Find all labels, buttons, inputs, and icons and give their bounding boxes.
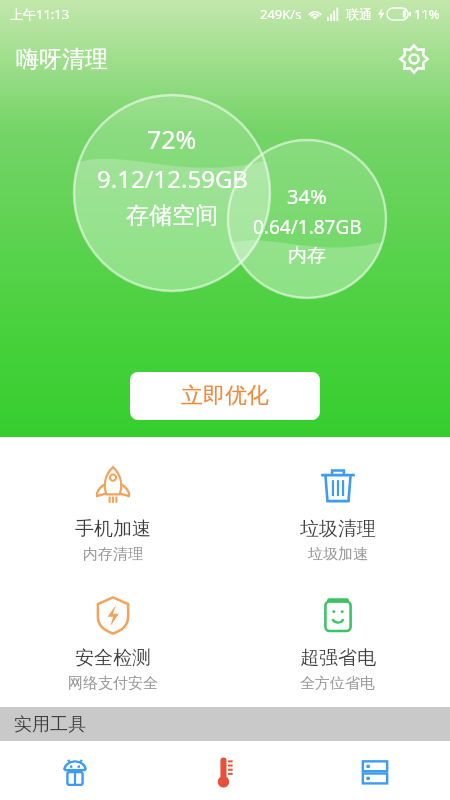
staticText: 全方位省电 <box>300 674 375 693</box>
staticText: 立即优化 <box>181 382 269 410</box>
staticText: 存储空间 <box>126 201 218 230</box>
staticText: 34% <box>287 183 327 210</box>
staticText: 垃圾加速 <box>308 545 368 564</box>
button[interactable]: 超强省电 <box>225 588 450 699</box>
staticText: 0.64/1.87GB <box>253 214 362 240</box>
button[interactable]: 垃圾清理 <box>225 459 450 570</box>
staticText: 手机加速 <box>75 517 151 541</box>
staticText: 超强省电 <box>300 646 376 670</box>
staticText: 嗨呀清理 <box>16 45 108 74</box>
staticText: 9.12/12.59GB <box>97 162 248 195</box>
button[interactable]: 立即优化 <box>130 372 320 420</box>
button[interactable]: CPU cooling <box>150 753 300 800</box>
button[interactable]: App manager <box>300 753 450 800</box>
staticText: 网络支付安全 <box>68 674 158 693</box>
staticText: 72% <box>147 122 197 156</box>
button[interactable]: 安全检测 <box>0 588 225 699</box>
staticText: 11% <box>414 5 440 23</box>
staticText: 安全检测 <box>75 646 151 670</box>
staticText: 联通 <box>346 6 372 22</box>
staticText: 实用工具 <box>14 713 86 736</box>
button[interactable]: Android cleanup <box>0 753 150 800</box>
button[interactable]: 手机加速 <box>0 459 225 570</box>
staticText: 内存 <box>288 244 326 268</box>
staticText: 249K/s <box>260 5 302 23</box>
staticText: 上午11:13 <box>10 5 70 23</box>
button[interactable]: Settings <box>392 37 436 81</box>
staticText: 内存清理 <box>83 545 143 564</box>
staticText: 垃圾清理 <box>300 517 376 541</box>
